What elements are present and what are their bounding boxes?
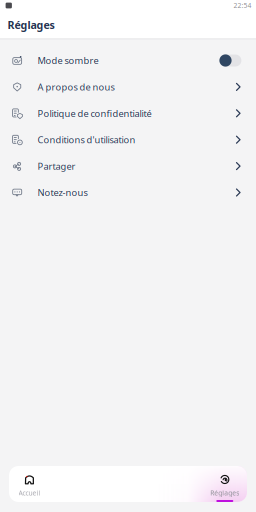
staticText: Réglages bbox=[7, 18, 54, 32]
button[interactable]: A propos de nous bbox=[0, 74, 256, 100]
staticText: Réglages bbox=[210, 488, 239, 497]
staticText: A propos de nous bbox=[37, 81, 114, 93]
button[interactable]: Mode sombre bbox=[0, 47, 256, 74]
staticText: Mode sombre bbox=[37, 54, 98, 67]
button[interactable]: Réglages bbox=[210, 466, 247, 502]
button[interactable]: Mode sombre bbox=[219, 54, 241, 67]
button[interactable]: Politique de confidentialité bbox=[0, 100, 256, 126]
staticText: Partager bbox=[37, 160, 75, 172]
button[interactable]: Notez-nous bbox=[0, 179, 256, 206]
button[interactable]: Partager bbox=[0, 153, 256, 179]
button[interactable]: Accueil bbox=[9, 466, 44, 502]
staticText: 22:54 bbox=[233, 1, 251, 10]
staticText: Accueil bbox=[18, 488, 40, 497]
staticText: Politique de confidentialité bbox=[37, 107, 151, 119]
staticText: Conditions d'utilisation bbox=[37, 133, 135, 146]
button[interactable]: Conditions d'utilisation bbox=[0, 126, 256, 153]
staticText: Notez-nous bbox=[37, 186, 87, 199]
